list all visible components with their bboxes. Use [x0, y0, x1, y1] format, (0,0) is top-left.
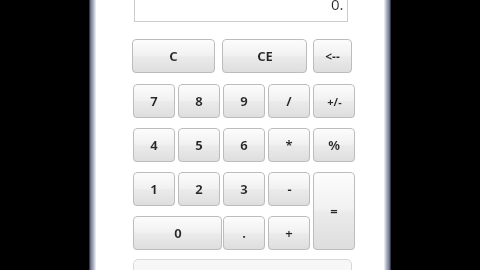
- staticText: 0.: [331, 0, 344, 14]
- staticText: -: [287, 180, 292, 198]
- button[interactable]: 7: [133, 84, 175, 118]
- staticText: C: [169, 47, 178, 65]
- button[interactable]: 0.: [134, 0, 348, 22]
- button[interactable]: [133, 259, 352, 270]
- button[interactable]: +: [268, 216, 310, 250]
- staticText: =: [330, 202, 338, 220]
- staticText: CE: [257, 47, 273, 65]
- button[interactable]: 3: [223, 172, 265, 206]
- staticText: 1: [150, 180, 158, 198]
- staticText: <--: [325, 48, 340, 64]
- staticText: +: [285, 224, 293, 242]
- button[interactable]: 2: [178, 172, 220, 206]
- button[interactable]: 1: [133, 172, 175, 206]
- button[interactable]: -: [268, 172, 310, 206]
- staticText: +/-: [327, 94, 342, 109]
- staticText: %: [328, 136, 340, 154]
- staticText: 6: [240, 136, 248, 154]
- button[interactable]: /: [268, 84, 310, 118]
- button[interactable]: 4: [133, 128, 175, 162]
- button[interactable]: CE: [222, 39, 307, 73]
- staticText: 9: [240, 92, 248, 110]
- staticText: 3: [240, 180, 248, 198]
- staticText: .: [242, 224, 246, 242]
- staticText: 0: [174, 224, 182, 242]
- button[interactable]: 6: [223, 128, 265, 162]
- button[interactable]: .: [223, 216, 265, 250]
- button[interactable]: 9: [223, 84, 265, 118]
- staticText: 2: [195, 180, 203, 198]
- button[interactable]: 5: [178, 128, 220, 162]
- button[interactable]: =: [313, 172, 355, 250]
- button[interactable]: 8: [178, 84, 220, 118]
- button[interactable]: Backspace: [313, 39, 352, 73]
- button[interactable]: 0: [133, 216, 222, 250]
- staticText: 5: [195, 136, 203, 154]
- button[interactable]: %: [313, 128, 355, 162]
- staticText: 4: [150, 136, 158, 154]
- staticText: 8: [195, 92, 203, 110]
- button[interactable]: *: [268, 128, 310, 162]
- staticText: *: [285, 136, 293, 154]
- button[interactable]: +/-: [313, 84, 355, 118]
- staticText: /: [286, 92, 292, 110]
- button[interactable]: C: [132, 39, 215, 73]
- staticText: 7: [150, 92, 158, 110]
